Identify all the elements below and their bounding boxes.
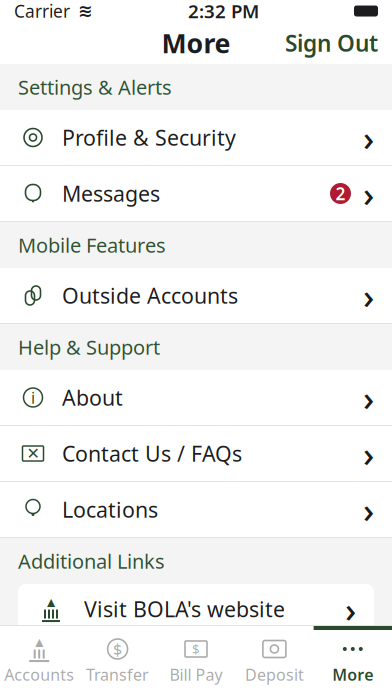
staticText: Settings & Alerts xyxy=(18,74,172,100)
staticText: About xyxy=(62,383,123,412)
staticText: Carrier xyxy=(14,0,70,22)
staticText: Additional Links xyxy=(18,548,165,574)
staticText: Visit BOLA's website xyxy=(84,595,285,623)
staticText: › xyxy=(363,114,374,160)
button[interactable]: More xyxy=(314,626,392,696)
staticText: › xyxy=(363,486,374,532)
staticText: ≋ xyxy=(78,1,93,21)
button[interactable]: Locations xyxy=(0,482,392,538)
staticText: Transfer xyxy=(86,664,149,685)
staticText: › xyxy=(363,374,374,420)
button[interactable]: ▲ xyxy=(0,584,392,634)
button[interactable]: ✕ xyxy=(0,426,392,482)
staticText: $ xyxy=(113,638,122,660)
staticText: › xyxy=(363,272,374,318)
staticText: Help & Support xyxy=(18,334,160,360)
staticText: Deposit xyxy=(245,664,304,685)
staticText: ✕ xyxy=(26,444,39,463)
staticText: Mobile Features xyxy=(18,232,166,258)
button[interactable]: Deposit xyxy=(235,626,314,696)
button[interactable]: $ xyxy=(157,626,235,696)
staticText: › xyxy=(345,586,356,632)
staticText: › xyxy=(363,430,374,476)
button[interactable]: $ xyxy=(78,626,157,696)
button[interactable]: Outside Accounts xyxy=(0,268,392,324)
staticText: $ xyxy=(192,640,200,658)
button[interactable]: Sign Out xyxy=(271,20,392,66)
staticText: More xyxy=(332,664,373,685)
staticText: Sign Out xyxy=(285,28,378,58)
staticText: ▲ xyxy=(35,636,43,648)
button[interactable]: Messages xyxy=(0,166,392,222)
staticText: Locations xyxy=(62,495,158,524)
staticText: 2:32 PM xyxy=(188,0,259,23)
staticText: Profile & Security xyxy=(62,123,236,152)
staticText: More xyxy=(161,25,230,61)
staticText: Contact Us / FAQs xyxy=(62,439,242,468)
staticText: Messages xyxy=(62,179,160,208)
staticText: 2 xyxy=(335,182,345,205)
staticText: ▲ xyxy=(47,596,55,608)
button[interactable]: ▲ xyxy=(0,626,78,696)
button[interactable]: i xyxy=(0,370,392,426)
staticText: Outside Accounts xyxy=(62,281,238,310)
staticText: i xyxy=(31,387,35,408)
staticText: Accounts xyxy=(4,664,74,685)
staticText: Bill Pay xyxy=(169,664,222,685)
button[interactable]: Profile & Security xyxy=(0,110,392,166)
staticText: › xyxy=(363,170,374,216)
